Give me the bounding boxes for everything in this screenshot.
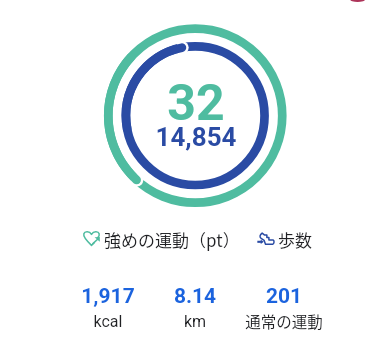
button[interactable]: 8.14 bbox=[135, 284, 255, 331]
staticText: 通常の運動 bbox=[224, 310, 344, 332]
staticText: 32 bbox=[76, 74, 316, 133]
other: Steps bbox=[257, 232, 274, 246]
staticText: 1,917 bbox=[48, 284, 168, 309]
button[interactable]: Heart points bbox=[83, 227, 240, 252]
button[interactable]: 1,917 bbox=[48, 284, 168, 331]
button[interactable]: Steps bbox=[257, 227, 312, 252]
button[interactable]: 201 bbox=[224, 284, 344, 332]
staticText: km bbox=[135, 312, 255, 331]
staticText: 強めの運動（pt） bbox=[104, 227, 240, 252]
staticText: 歩数 bbox=[278, 227, 312, 252]
staticText: kcal bbox=[48, 312, 168, 331]
staticText: 201 bbox=[224, 284, 344, 309]
staticText: 8.14 bbox=[135, 284, 255, 309]
staticText: 14,854 bbox=[76, 122, 316, 152]
other: Heart points bbox=[83, 231, 100, 246]
